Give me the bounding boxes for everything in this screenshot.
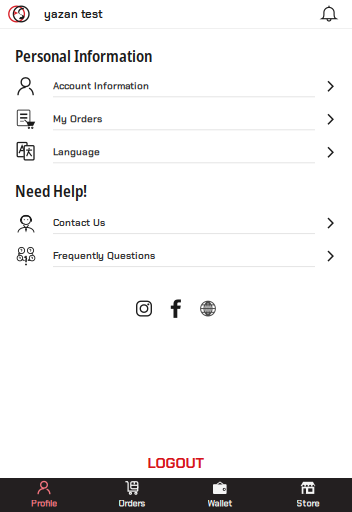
staticText: Personal Information — [15, 45, 152, 67]
button[interactable]: Notifications — [316, 1, 342, 27]
staticText: LOGOUT — [147, 453, 204, 473]
button[interactable]: Contact Us — [0, 207, 352, 240]
staticText: Account Information — [53, 79, 149, 92]
button[interactable]: Wallet — [176, 478, 264, 512]
staticText: My Orders — [53, 112, 102, 125]
staticText: Language — [53, 145, 100, 158]
staticText: yazan test — [44, 6, 103, 21]
button[interactable]: Instagram — [134, 299, 154, 319]
button[interactable]: Account Information — [0, 70, 352, 103]
button[interactable]: My Orders — [0, 103, 352, 136]
button[interactable]: Profile — [0, 478, 88, 512]
staticText: Wallet — [207, 498, 232, 509]
staticText: Contact Us — [53, 216, 105, 229]
staticText: Profile — [31, 498, 57, 509]
button[interactable]: LOGOUT — [0, 448, 352, 478]
button[interactable]: Facebook — [168, 299, 184, 319]
button[interactable]: Store — [264, 478, 352, 512]
staticText: Frequently Questions — [53, 249, 155, 262]
button[interactable]: Website — [198, 299, 218, 319]
button[interactable]: Language — [0, 136, 352, 169]
staticText: Orders — [118, 498, 145, 509]
staticText: Need Help! — [15, 180, 87, 202]
button[interactable]: Frequently Questions — [0, 240, 352, 273]
button[interactable]: Orders — [88, 478, 176, 512]
staticText: Store — [296, 498, 319, 509]
